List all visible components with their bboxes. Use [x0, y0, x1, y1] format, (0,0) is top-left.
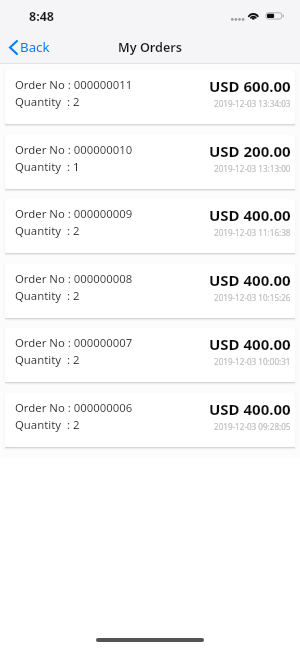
button[interactable]: Order No : 000000008	[5, 264, 295, 318]
button[interactable]: Order No : 000000006	[5, 393, 295, 447]
staticText: 8:48	[29, 8, 54, 25]
staticText: USD 600.00	[209, 76, 291, 96]
staticText: Quantity : 1	[15, 159, 80, 174]
staticText: Order No : 000000010	[15, 142, 133, 157]
staticText: Order No : 000000008	[15, 271, 133, 286]
staticText: Quantity : 2	[15, 352, 80, 367]
staticText: Quantity : 2	[15, 288, 80, 303]
staticText: 2019-12-03 09:28:05	[214, 421, 291, 432]
staticText: Order No : 000000011	[15, 77, 133, 92]
staticText: 2019-12-03 13:13:00	[214, 163, 291, 174]
staticText: 2019-12-03 10:15:26	[214, 292, 291, 303]
staticText: USD 200.00	[209, 141, 291, 161]
button[interactable]: Order No : 000000007	[5, 328, 295, 382]
staticText: USD 400.00	[209, 205, 291, 225]
staticText: USD 400.00	[209, 334, 291, 354]
staticText: Quantity : 2	[15, 417, 80, 432]
staticText: My Orders	[118, 39, 182, 56]
staticText: Quantity : 2	[15, 223, 80, 238]
staticText: USD 400.00	[209, 399, 291, 419]
staticText: Order No : 000000006	[15, 400, 133, 415]
staticText: Order No : 000000009	[15, 206, 133, 221]
staticText: 2019-12-03 10:00:31	[214, 356, 291, 367]
button[interactable]: Back	[0, 32, 60, 62]
staticText: 2019-12-03 13:34:03	[214, 98, 291, 109]
staticText: USD 400.00	[209, 270, 291, 290]
staticText: Order No : 000000007	[15, 335, 133, 350]
button[interactable]: Order No : 000000010	[5, 135, 295, 189]
staticText: 2019-12-03 11:16:38	[214, 227, 291, 238]
staticText: Quantity : 2	[15, 94, 80, 109]
staticText: Back	[20, 38, 50, 56]
button[interactable]: Order No : 000000011	[5, 70, 295, 124]
button[interactable]: Order No : 000000009	[5, 199, 295, 253]
